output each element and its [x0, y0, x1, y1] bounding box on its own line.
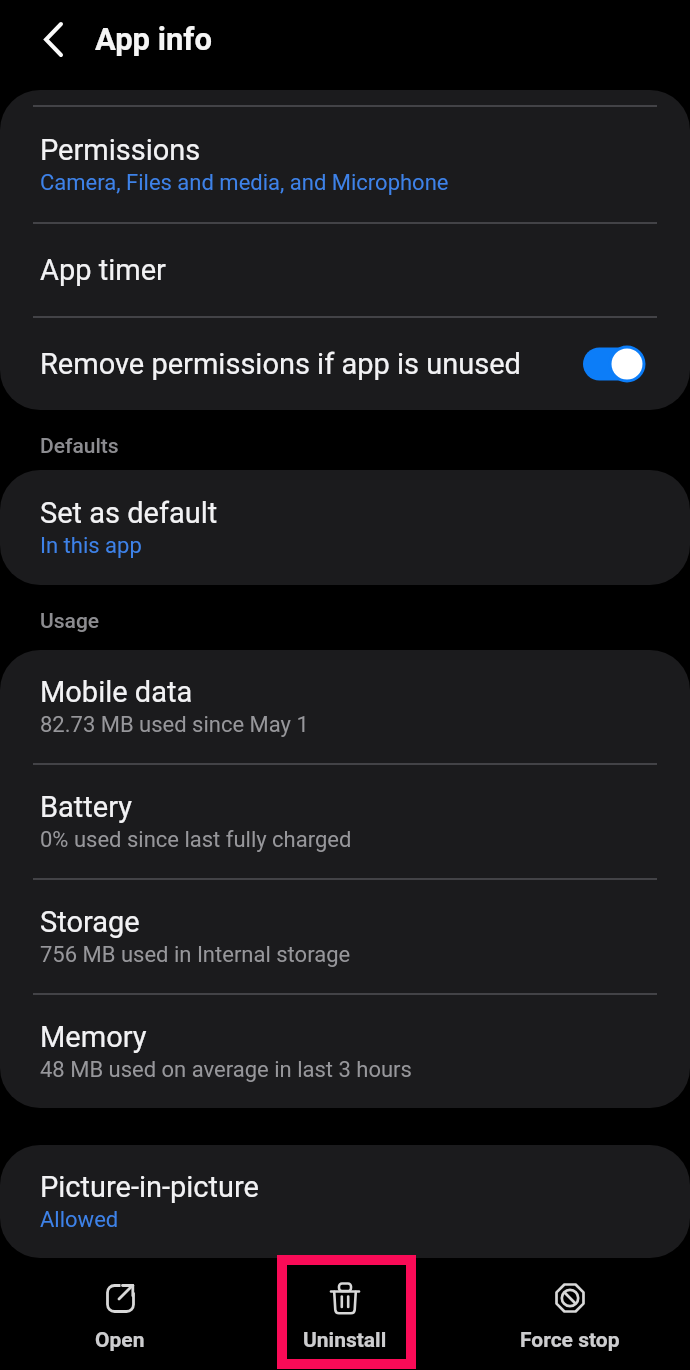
button[interactable]: Permissions [0, 107, 690, 222]
staticText: 0% used since last fully charged [40, 827, 352, 853]
staticText: 48 MB used on average in last 3 hours [40, 1057, 412, 1083]
button[interactable]: Set as default [0, 470, 690, 585]
staticText: App info [95, 21, 212, 57]
button[interactable] [0, 0, 90, 90]
staticText: In this app [40, 533, 142, 559]
button[interactable]: Mobile data [0, 650, 690, 763]
staticText: Storage [40, 905, 140, 939]
staticText: Remove permissions if app is unused [40, 347, 582, 381]
staticText: Force stop [520, 1328, 620, 1353]
staticText: 82.73 MB used since May 1 [40, 712, 309, 738]
button[interactable]: Remove permissions if app is unused [0, 318, 690, 410]
staticText: Picture-in-picture [40, 1170, 259, 1204]
staticText: Mobile data [40, 675, 193, 709]
staticText: Open [95, 1328, 145, 1353]
staticText: Battery [40, 790, 132, 824]
staticText: Usage [40, 609, 100, 634]
button[interactable]: Picture-in-picture [0, 1145, 690, 1258]
button[interactable]: Memory [0, 995, 690, 1108]
staticText: Memory [40, 1020, 147, 1054]
staticText: Uninstall [303, 1328, 387, 1353]
button[interactable]: Force stop [450, 1258, 690, 1370]
staticText: Permissions [40, 133, 201, 167]
button[interactable]: App timer [0, 224, 690, 316]
staticText: Allowed [40, 1207, 119, 1233]
button[interactable]: Open [0, 1258, 240, 1370]
staticText: Defaults [40, 434, 119, 459]
button[interactable]: Storage [0, 880, 690, 993]
button[interactable]: Battery [0, 765, 690, 878]
staticText: App timer [40, 253, 166, 287]
staticText: Camera, Files and media, and Microphone [40, 170, 449, 196]
button[interactable]: Uninstall [240, 1258, 450, 1370]
staticText: Set as default [40, 496, 218, 530]
staticText: 756 MB used in Internal storage [40, 942, 351, 968]
